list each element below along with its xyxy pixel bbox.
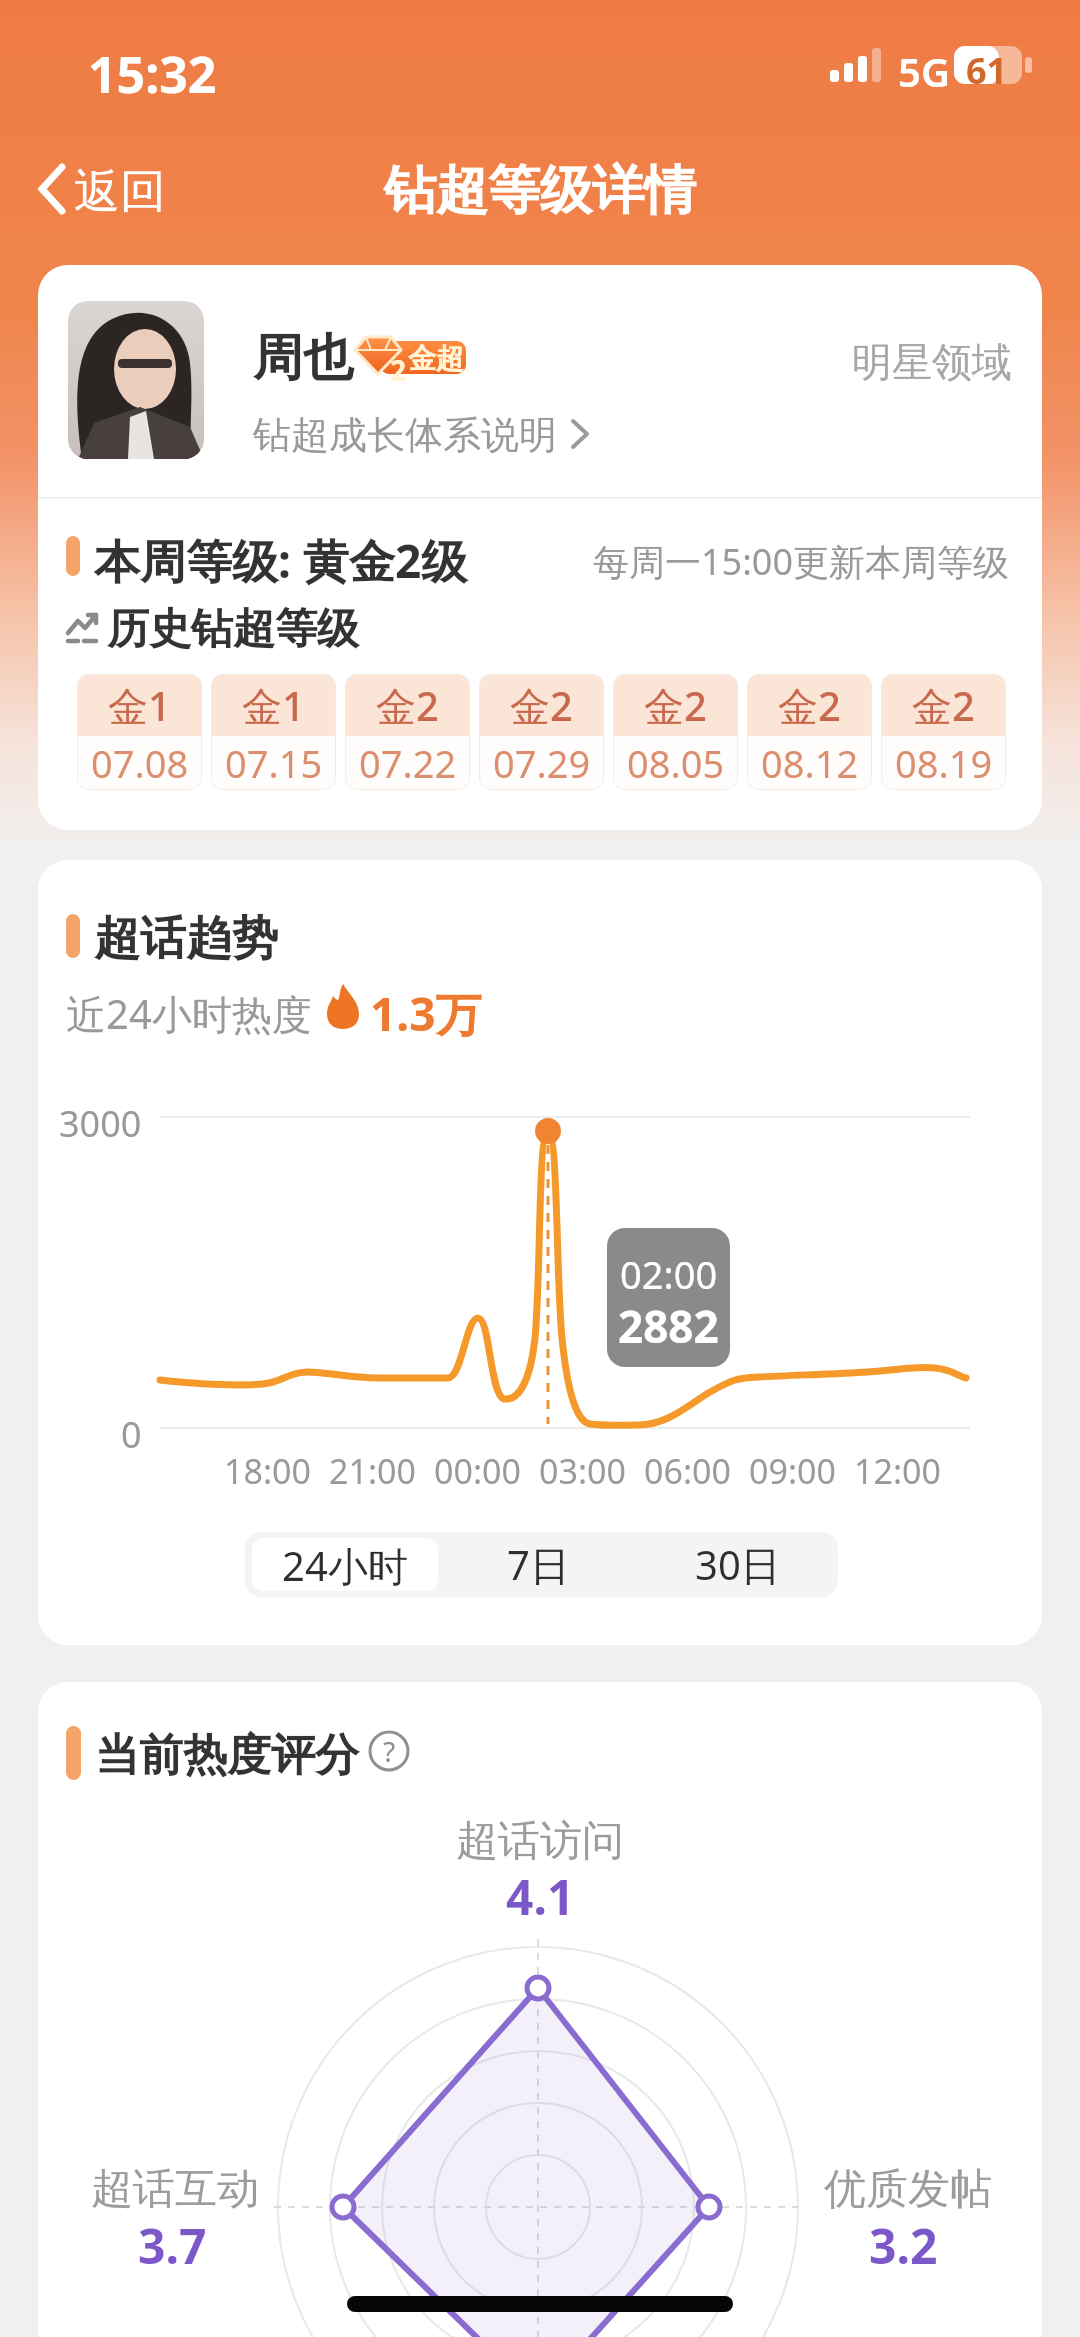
staticText: 0 [121,1410,142,1459]
staticText: 历史钻超等级 [107,603,359,656]
button[interactable]: 金2 [345,674,470,790]
staticText: 08.05 [627,737,725,789]
button[interactable]: 金1 [211,674,336,790]
button[interactable]: ? [368,1730,410,1772]
staticText: 03:00 [539,1448,626,1494]
staticText: 07.15 [225,737,323,789]
staticText: 00:00 [434,1448,521,1494]
staticText: 金1 [242,678,305,733]
staticText: 15:32 [88,40,217,108]
staticText: 金2 [778,678,841,733]
button[interactable]: 金超 [354,333,466,379]
staticText: 3.7 [138,2213,207,2278]
staticText: 18:00 [224,1448,311,1494]
staticText: 钻超等级详情 [384,158,696,224]
staticText: 明星领域 [852,337,1012,387]
staticText: 07.22 [359,737,457,789]
staticText: 每周一15:00更新本周等级 [593,537,1010,586]
staticText: 超话互动 [91,2163,259,2216]
staticText: 2882 [618,1296,719,1356]
staticText: ? [383,1732,396,1770]
staticText: 金超 [408,341,464,374]
staticText: 超话访问 [456,1815,624,1868]
staticText: 24小时 [282,1538,408,1591]
staticText: 12:00 [854,1448,941,1494]
staticText: 当前热度评分 [95,1728,359,1783]
button[interactable]: 金2 [881,674,1006,790]
button[interactable]: 金2 [479,674,604,790]
staticText: 1.3万 [370,982,482,1045]
staticText: 21:00 [329,1448,416,1494]
staticText: 近24小时热度 [66,986,312,1041]
staticText: 返回 [74,163,166,221]
staticText: 3000 [59,1099,142,1148]
staticText: 07.08 [91,737,189,789]
button[interactable]: 30日 [638,1532,838,1597]
button[interactable]: 24小时 [252,1538,438,1591]
staticText: 金2 [644,678,707,733]
staticText: 3.2 [869,2213,938,2278]
staticText: 金2 [376,678,439,733]
staticText: 07.29 [493,737,591,789]
staticText: 金2 [912,678,975,733]
button[interactable]: 7日 [438,1532,638,1597]
staticText: 优质发帖 [824,2163,992,2216]
staticText: 4.1 [506,1864,575,1929]
staticText: 06:00 [644,1448,731,1494]
staticText: 5G [898,44,950,98]
button[interactable]: 金2 [613,674,738,790]
staticText: 金1 [108,678,171,733]
staticText: 08.12 [761,737,859,789]
staticText: 金2 [510,678,573,733]
staticText: 2 [390,351,407,389]
staticText: 30日 [695,1537,781,1592]
staticText: 本周等级: 黄金2级 [94,529,468,592]
button[interactable]: 钻超成长体系说明 [253,405,613,457]
staticText: 61 [966,46,1008,95]
button[interactable]: 金2 [747,674,872,790]
button[interactable]: 金1 [77,674,202,790]
staticText: 02:00 [620,1248,718,1300]
staticText: 09:00 [749,1448,836,1494]
staticText: 超话趋势 [94,910,278,968]
button[interactable]: 返回 [30,155,190,225]
staticText: 7日 [507,1537,570,1592]
staticText: 钻超成长体系说明 [253,411,557,459]
staticText: 08.19 [895,737,993,789]
staticText: 周也 [253,327,353,390]
